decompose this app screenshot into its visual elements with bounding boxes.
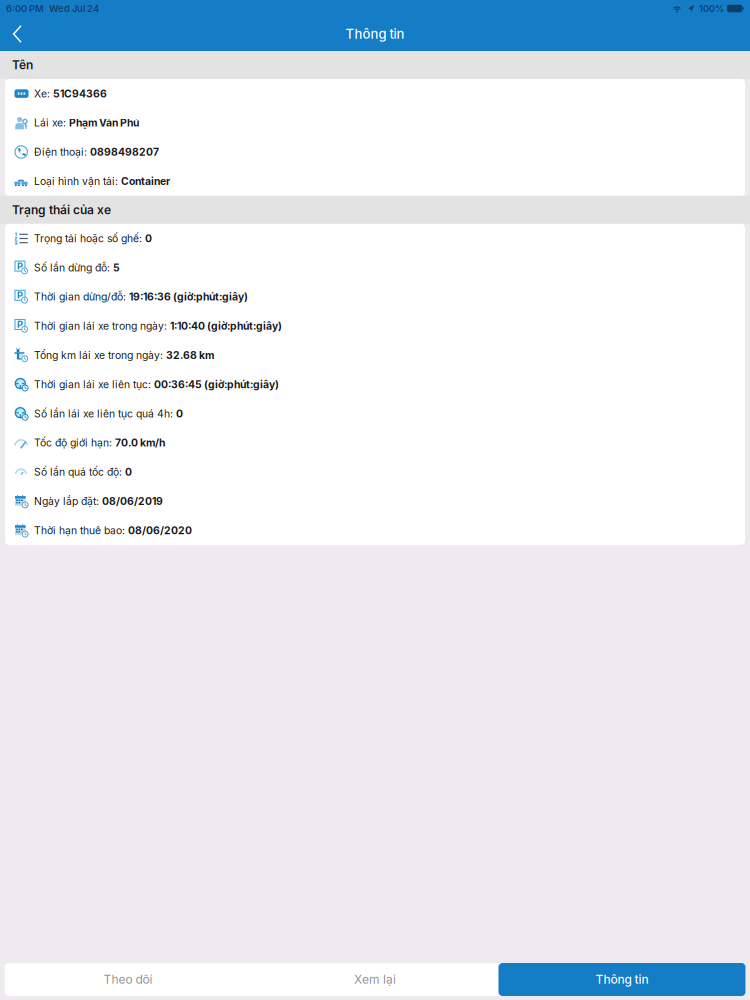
staticText: Thời gian lái xe trong ngày: 1:10:40 (gi… — [34, 320, 282, 332]
staticText: Ngày lắp đặt: 08/06/2019 — [34, 495, 163, 507]
staticText: 6:00 PM — [6, 3, 44, 14]
staticText: Thời gian lái xe liên tục: 00:36:45 (giờ… — [34, 378, 279, 391]
staticText: Số lần lái xe liên tục quá 4h: 0 — [34, 407, 183, 420]
button[interactable]: P — [5, 311, 745, 341]
staticText: Số lần quá tốc độ: 0 — [34, 466, 132, 478]
button[interactable]: Tổng km lái xe trong ngày: 32.68 km — [5, 341, 745, 370]
staticText: Lái xe: Phạm Văn Phú — [34, 117, 139, 129]
button[interactable]: Số lần quá tốc độ: 0 — [5, 457, 745, 487]
staticText: Trạng thái của xe — [12, 202, 111, 217]
button[interactable]: Back — [0, 17, 39, 51]
staticText: Loại hình vận tải: Container — [34, 175, 170, 187]
button[interactable]: Thông tin — [498, 963, 745, 996]
staticText: Điện thoại: 0898498207 — [34, 146, 159, 158]
staticText: Tên — [12, 58, 33, 72]
button[interactable]: Tốc độ giới hạn: 70.0 km/h — [5, 428, 745, 457]
staticText: Trọng tải hoặc số ghế: 0 — [34, 232, 152, 245]
staticText: P — [17, 260, 23, 272]
staticText: Wed Jul 24 — [49, 3, 99, 14]
button[interactable]: Điện thoại: 0898498207 — [5, 137, 745, 167]
button[interactable]: Thời gian lái xe liên tục: 00:36:45 (giờ… — [5, 370, 745, 399]
staticText: Tổng km lái xe trong ngày: 32.68 km — [34, 349, 214, 361]
button[interactable]: Số lần lái xe liên tục quá 4h: 0 — [5, 399, 745, 428]
button[interactable]: Xem lại — [251, 963, 498, 996]
staticText: Thông tin — [595, 972, 648, 987]
staticText: 100% — [699, 3, 724, 14]
staticText: P — [17, 290, 23, 301]
button[interactable]: Xe: 51C94366 — [5, 79, 745, 108]
staticText: Tốc độ giới hạn: 70.0 km/h — [34, 437, 165, 449]
staticText: Xe: 51C94366 — [34, 87, 107, 100]
staticText: Xem lại — [354, 972, 396, 987]
staticText: Thời gian dừng/đỗ: 19:16:36 (giờ:phút:gi… — [34, 291, 248, 303]
button[interactable]: Lái xe: Phạm Văn Phú — [5, 108, 745, 137]
button[interactable]: P — [5, 282, 745, 311]
button[interactable]: Thời hạn thuê bao: 08/06/2020 — [5, 516, 745, 545]
staticText: Số lần dừng đỗ: 5 — [34, 261, 120, 274]
staticText: P — [17, 319, 23, 330]
staticText: Thông tin — [345, 26, 404, 42]
button[interactable]: Trọng tải hoặc số ghế: 0 — [5, 224, 745, 253]
staticText: Thời hạn thuê bao: 08/06/2020 — [34, 524, 192, 537]
button[interactable]: P — [5, 253, 745, 282]
button[interactable]: Theo dõi — [4, 963, 251, 996]
button[interactable]: Loại hình vận tải: Container — [5, 167, 745, 196]
staticText: Theo dõi — [103, 972, 152, 987]
button[interactable]: Ngày lắp đặt: 08/06/2019 — [5, 487, 745, 516]
